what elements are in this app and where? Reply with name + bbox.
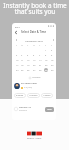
staticText: 10 xyxy=(16,59,19,62)
staticText: Tue Dec 19 xyxy=(19,106,31,109)
staticText: 4 xyxy=(21,54,23,57)
staticText: 24 xyxy=(16,69,19,72)
button[interactable]: 19 xyxy=(26,63,30,67)
button[interactable]: 16 xyxy=(50,58,54,62)
staticText: S xyxy=(16,44,18,47)
staticText: 2 xyxy=(51,49,53,52)
button[interactable]: 10:30am xyxy=(29,93,38,98)
staticText: 27 xyxy=(33,69,36,72)
staticText: 13 xyxy=(33,59,36,62)
staticText: 9:00am xyxy=(16,94,24,97)
button[interactable]: 11 xyxy=(20,58,24,62)
staticText: S xyxy=(51,44,53,47)
button[interactable]: 14 xyxy=(38,58,42,62)
staticText: 20 xyxy=(33,64,36,67)
staticText: 25 xyxy=(21,69,24,72)
staticText: F xyxy=(45,44,47,47)
button[interactable]: 13 xyxy=(32,58,36,62)
button[interactable]: 27 xyxy=(32,68,36,72)
staticText: T xyxy=(39,44,41,47)
staticText: 10:30am xyxy=(29,94,38,97)
button[interactable]: 23 xyxy=(50,63,54,67)
staticText: 7 xyxy=(39,54,41,57)
staticText: 29 xyxy=(45,69,48,72)
button[interactable]: 22 xyxy=(44,63,48,67)
button[interactable]: 18 xyxy=(20,63,24,67)
staticText: 9:41 xyxy=(15,25,20,28)
staticText: November 2024 xyxy=(25,39,43,42)
staticText: 18 xyxy=(21,64,24,67)
staticText: 12 xyxy=(27,59,30,62)
staticText: 19 xyxy=(27,64,30,67)
staticText: 6 xyxy=(33,54,35,57)
button[interactable]: 30 xyxy=(50,68,54,72)
staticText: 1 xyxy=(45,49,47,52)
button[interactable]: 20 xyxy=(32,63,36,67)
button[interactable]: 26 xyxy=(26,68,30,72)
staticText: Dr. Sarah Chen xyxy=(21,82,38,85)
staticText: Available xyxy=(32,76,41,79)
button[interactable]: 4 xyxy=(20,53,24,57)
staticText: T xyxy=(27,44,29,47)
button[interactable]: 10 xyxy=(15,58,19,62)
button[interactable]: 9 xyxy=(50,53,54,57)
button[interactable]: 17 xyxy=(15,63,19,67)
button[interactable]: Next xyxy=(47,108,52,111)
button[interactable]: 29 xyxy=(44,68,48,72)
button[interactable]: 12 xyxy=(26,58,30,62)
staticText: 23 xyxy=(51,64,54,67)
staticText: W xyxy=(33,44,35,47)
button[interactable]: 28 xyxy=(38,68,42,72)
button[interactable]: 2 xyxy=(50,48,54,52)
button[interactable]: 5 xyxy=(26,53,30,57)
staticText: 21 xyxy=(39,64,42,67)
staticText: 26 xyxy=(27,69,30,72)
button[interactable]: 1:00pm xyxy=(43,93,51,98)
staticText: M xyxy=(21,44,23,47)
button[interactable]: Next month xyxy=(51,38,55,42)
button[interactable]: 21 xyxy=(38,63,42,67)
button[interactable]: 3 xyxy=(15,53,19,57)
staticText: 17 xyxy=(16,64,19,67)
button[interactable]: 15 xyxy=(44,58,48,62)
staticText: 4.9 (128) xyxy=(24,86,32,89)
button[interactable]: 8 xyxy=(44,53,48,57)
staticText: 1:00pm xyxy=(43,94,51,97)
staticText: 14 xyxy=(39,59,42,62)
staticText: DIGITAL SMILE xyxy=(27,137,42,140)
button[interactable]: Dr. Sarah Chen xyxy=(14,82,54,89)
staticText: 5 xyxy=(27,54,29,57)
button[interactable]: Back xyxy=(14,30,18,34)
staticText: 8 xyxy=(45,54,47,57)
staticText: Instantly book a time that suits you xyxy=(3,1,67,16)
button[interactable]: Previous month xyxy=(14,38,18,42)
staticText: 3 xyxy=(16,54,18,57)
staticText: 09:00am xyxy=(19,109,28,112)
button[interactable]: 25 xyxy=(20,68,24,72)
button[interactable]: 6 xyxy=(32,53,36,57)
button[interactable]: 9:00am xyxy=(16,93,24,98)
staticText: 16 xyxy=(51,59,54,62)
staticText: Next xyxy=(47,108,52,111)
staticText: 30 xyxy=(51,69,54,72)
staticText: 9 xyxy=(51,54,53,57)
staticText: Select Date & Time xyxy=(21,30,47,34)
staticText: 28 xyxy=(39,69,42,72)
staticText: 11 xyxy=(21,59,24,62)
button[interactable]: 1 xyxy=(44,48,48,52)
staticText: 15 xyxy=(45,59,48,62)
button[interactable]: 24 xyxy=(15,68,19,72)
staticText: 22 xyxy=(45,64,48,67)
button[interactable]: 7 xyxy=(38,53,42,57)
